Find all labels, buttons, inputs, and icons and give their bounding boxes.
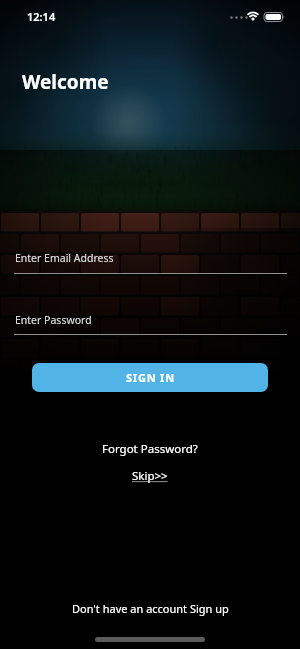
button[interactable]: Forgot Password? <box>102 441 198 457</box>
staticText: SIGN IN <box>126 370 175 385</box>
staticText: Welcome <box>22 69 109 95</box>
staticText: Enter Email Address <box>15 251 114 265</box>
staticText: 12:14 <box>27 9 56 24</box>
staticText: Enter Password <box>15 313 92 327</box>
button[interactable]: Don't have an account Sign up <box>72 601 229 616</box>
button[interactable]: Skip>> <box>132 468 168 484</box>
button[interactable]: SIGN IN <box>32 363 268 392</box>
